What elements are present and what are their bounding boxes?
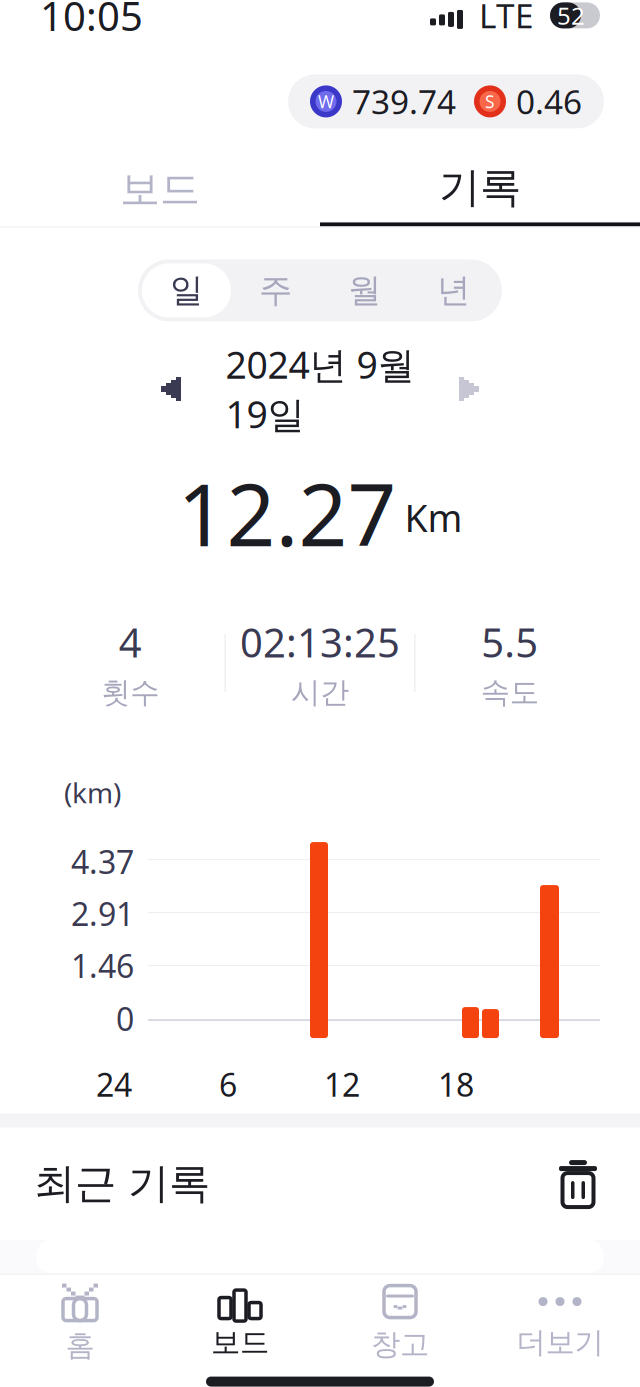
button[interactable]: 창고 — [320, 1275, 480, 1371]
staticText: 24 — [96, 1063, 132, 1106]
button[interactable]: 더보기 — [480, 1275, 640, 1371]
button[interactable]: 기록 — [320, 152, 640, 226]
staticText: 5.5 — [481, 615, 538, 668]
staticText: Km — [404, 493, 462, 542]
staticText: LTE — [479, 0, 534, 38]
staticText: 보드 — [211, 1325, 269, 1361]
button[interactable]: 기록 삭제 — [550, 1156, 606, 1212]
staticText: 12.27 — [177, 457, 396, 570]
staticText: 10:05 — [40, 0, 143, 42]
button[interactable]: 다음 날짜 — [438, 363, 502, 415]
button[interactable]: 보드 — [160, 1275, 320, 1371]
staticText: W — [318, 90, 334, 113]
staticText: 2024년 9월 19일 — [225, 339, 414, 439]
staticText: 시간 — [291, 674, 349, 710]
button[interactable]: 일 — [142, 263, 231, 317]
staticText: 창고 — [371, 1327, 429, 1363]
staticText: 1.46 — [71, 944, 134, 987]
button[interactable]: W — [288, 74, 604, 128]
staticText: 6 — [219, 1063, 237, 1106]
button[interactable]: 년 — [409, 263, 498, 317]
staticText: 횟수 — [101, 674, 159, 710]
staticText: (km) — [64, 774, 121, 811]
staticText: 52 — [557, 0, 585, 31]
staticText: 최근 기록 — [34, 1158, 210, 1209]
staticText: 0 — [116, 997, 134, 1040]
staticText: S — [485, 90, 495, 113]
staticText: 4 — [119, 615, 142, 668]
staticText: 주 — [259, 270, 292, 311]
button[interactable]: 보드 — [0, 152, 320, 226]
button[interactable]: 주 — [231, 263, 320, 317]
staticText: 더보기 — [516, 1325, 603, 1361]
button[interactable]: 이전 날짜 — [138, 363, 202, 415]
staticText: 보드 — [120, 165, 200, 214]
staticText: 739.74 — [352, 79, 456, 124]
staticText: 4.37 — [71, 840, 134, 883]
staticText: 일 — [170, 270, 203, 311]
staticText: 18 — [438, 1063, 474, 1106]
staticText: 속도 — [481, 674, 539, 710]
staticText: 기록 — [439, 162, 521, 213]
staticText: 0.46 — [516, 79, 582, 124]
staticText: 월 — [348, 270, 381, 311]
staticText: 홈 — [65, 1328, 94, 1364]
staticText: 년 — [437, 270, 470, 311]
button[interactable]: 홈 — [0, 1275, 160, 1371]
staticText: 02:13:25 — [240, 615, 400, 668]
staticText: 2.91 — [71, 892, 134, 935]
button[interactable]: 월 — [320, 263, 409, 317]
staticText: 12 — [324, 1063, 360, 1106]
